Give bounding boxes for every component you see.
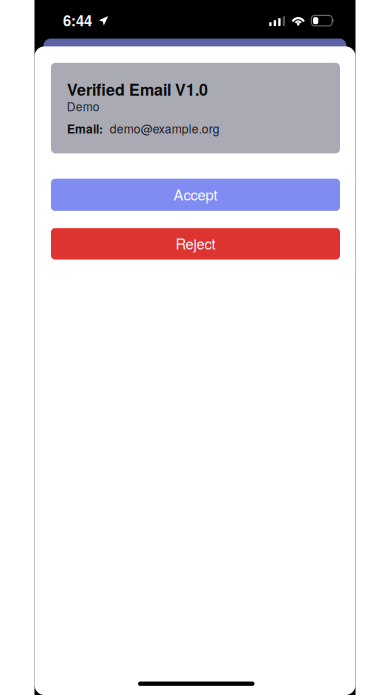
staticText: Demo bbox=[67, 97, 100, 115]
staticText: 6:44 bbox=[63, 10, 92, 31]
button[interactable]: Reject bbox=[51, 228, 340, 259]
staticText: Verified Email V1.0 bbox=[67, 78, 208, 101]
staticText: demo@example.org bbox=[110, 120, 220, 137]
staticText: Reject bbox=[175, 233, 215, 254]
staticText: Accept bbox=[173, 184, 217, 205]
staticText: Email: bbox=[67, 120, 103, 137]
button[interactable]: Accept bbox=[51, 179, 340, 211]
